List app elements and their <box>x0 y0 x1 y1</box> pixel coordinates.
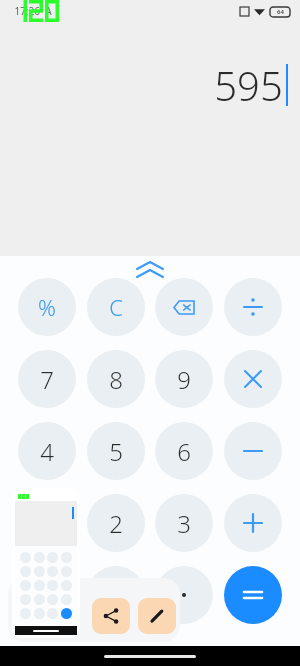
button[interactable]: Edit <box>138 598 176 634</box>
button[interactable]: 3 <box>155 494 213 552</box>
staticText: 595 <box>214 58 283 112</box>
button[interactable]: 4 <box>18 422 76 480</box>
button[interactable]: 7 <box>18 350 76 408</box>
button[interactable]: 8 <box>87 350 145 408</box>
button[interactable] <box>224 494 282 552</box>
staticText: 0 <box>40 579 54 612</box>
staticText: 6 <box>177 435 191 468</box>
button[interactable] <box>87 566 145 624</box>
staticText: 8 <box>109 363 123 396</box>
button[interactable]: 9 <box>155 350 213 408</box>
staticText: 9 <box>177 363 191 396</box>
button[interactable]: Backspace <box>155 278 213 336</box>
staticText: 7 <box>40 363 54 396</box>
button[interactable] <box>224 566 282 624</box>
button[interactable]: Screenshot preview <box>12 488 80 638</box>
button[interactable] <box>224 278 282 336</box>
staticText: % <box>38 292 56 322</box>
button[interactable]: % <box>18 278 76 336</box>
staticText: 3 <box>177 507 191 540</box>
button[interactable]: 0 <box>18 566 76 624</box>
button[interactable] <box>224 350 282 408</box>
button[interactable]: C <box>87 278 145 336</box>
staticText: 4 <box>40 435 54 468</box>
button[interactable]: 2 <box>87 494 145 552</box>
staticText: 17:26 A <box>14 4 52 18</box>
staticText: 2 <box>109 507 123 540</box>
button[interactable]: Share <box>92 598 130 634</box>
staticText: C <box>109 292 123 322</box>
button[interactable]: 6 <box>155 422 213 480</box>
button[interactable]: 1 <box>18 494 76 552</box>
staticText: 64 <box>277 8 284 16</box>
button[interactable]: 5 <box>87 422 145 480</box>
button[interactable] <box>155 566 213 624</box>
staticText: 5 <box>109 435 123 468</box>
button[interactable] <box>224 422 282 480</box>
